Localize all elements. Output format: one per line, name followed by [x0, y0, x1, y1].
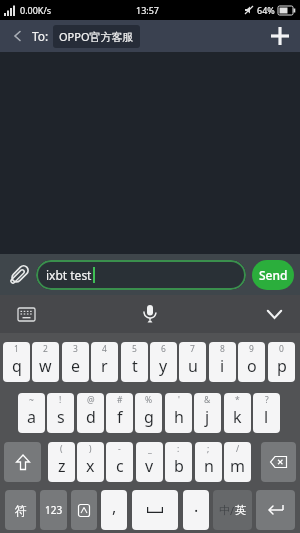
staticText: ' — [178, 394, 180, 406]
button[interactable] — [261, 442, 296, 482]
button[interactable]: @ — [77, 393, 104, 433]
staticText: p — [277, 355, 287, 377]
button[interactable]: 7 — [179, 342, 206, 382]
staticText: / — [236, 443, 240, 455]
button[interactable] — [256, 490, 295, 530]
button[interactable]: ! — [47, 393, 74, 433]
staticText: x — [86, 455, 95, 477]
button[interactable]: Send — [252, 260, 294, 290]
staticText: - — [118, 443, 121, 455]
staticText: & — [204, 394, 211, 406]
staticText: q — [12, 355, 22, 377]
staticText: @ — [87, 394, 95, 406]
button[interactable]: : — [165, 442, 192, 482]
staticText: ! — [59, 394, 62, 406]
staticText: n — [204, 455, 214, 477]
staticText: 64% — [257, 4, 275, 16]
staticText: Send — [259, 267, 288, 283]
button[interactable]: . — [183, 490, 209, 530]
staticText: 2 — [43, 343, 48, 355]
staticText: g — [144, 406, 154, 428]
staticText: : — [177, 443, 180, 455]
button[interactable]: * — [224, 393, 251, 433]
button[interactable]: ( — [48, 442, 75, 482]
staticText: , — [112, 496, 117, 518]
staticText: 4 — [102, 343, 107, 355]
button[interactable]: - — [106, 442, 133, 482]
button[interactable]: 3 — [62, 342, 89, 382]
button[interactable]: ixbt test — [36, 260, 246, 290]
staticText: * — [235, 394, 240, 406]
staticText: 英 — [235, 503, 246, 517]
staticText: 8 — [220, 343, 225, 355]
staticText: o — [247, 355, 257, 377]
button[interactable] — [132, 490, 178, 530]
button[interactable]: 4 — [91, 342, 118, 382]
button[interactable]: ; — [195, 442, 222, 482]
button[interactable] — [5, 261, 33, 289]
staticText: k — [233, 406, 242, 428]
staticText: l — [264, 406, 269, 428]
staticText: t — [132, 355, 138, 377]
staticText: m — [230, 455, 245, 477]
button[interactable] — [136, 300, 164, 328]
staticText: f — [117, 406, 123, 428]
button[interactable] — [71, 490, 97, 530]
button[interactable]: # — [106, 393, 133, 433]
staticText: ) — [89, 443, 92, 455]
button[interactable] — [260, 300, 288, 328]
button[interactable]: 1 — [3, 342, 30, 382]
button[interactable]: 5 — [121, 342, 148, 382]
staticText: / — [230, 503, 235, 518]
button[interactable] — [4, 442, 41, 482]
staticText: 6 — [161, 343, 166, 355]
button[interactable]: , — [101, 490, 127, 530]
button[interactable]: ' — [165, 393, 192, 433]
staticText: 0 — [279, 343, 284, 355]
staticText: _ — [148, 443, 152, 455]
staticText: 13:57 — [136, 4, 160, 16]
staticText: 中 — [219, 503, 230, 517]
staticText: To: — [32, 28, 49, 44]
button[interactable]: 符 — [5, 490, 36, 530]
staticText: c — [116, 455, 124, 477]
button[interactable]: 中 — [213, 490, 252, 530]
staticText: 1 — [14, 343, 19, 355]
staticText: i — [220, 355, 225, 377]
button[interactable]: % — [135, 393, 162, 433]
button[interactable]: 9 — [238, 342, 265, 382]
staticText: b — [174, 455, 184, 477]
button[interactable] — [12, 300, 40, 328]
button[interactable]: / — [224, 442, 251, 482]
staticText: h — [174, 406, 184, 428]
button[interactable] — [8, 27, 26, 45]
staticText: a — [27, 406, 36, 428]
button[interactable]: & — [194, 393, 221, 433]
staticText: y — [159, 355, 168, 377]
staticText: ? — [265, 394, 269, 406]
staticText: z — [58, 455, 66, 477]
staticText: . — [194, 495, 199, 517]
button[interactable]: 2 — [32, 342, 59, 382]
staticText: r — [101, 355, 108, 377]
button[interactable]: ~ — [18, 393, 45, 433]
button[interactable] — [268, 24, 292, 48]
button[interactable]: OPPO官方客服 — [53, 25, 140, 48]
staticText: ; — [207, 443, 210, 455]
button[interactable]: 6 — [150, 342, 177, 382]
button[interactable]: 8 — [209, 342, 236, 382]
staticText: u — [188, 355, 198, 377]
staticText: # — [117, 394, 123, 406]
button[interactable]: 0 — [268, 342, 295, 382]
button[interactable]: 123 — [40, 490, 67, 530]
staticText: 9 — [249, 343, 254, 355]
staticText: v — [145, 455, 154, 477]
button[interactable]: _ — [136, 442, 163, 482]
staticText: e — [71, 355, 81, 377]
staticText: d — [86, 406, 96, 428]
staticText: 123 — [45, 503, 63, 517]
staticText: j — [205, 406, 210, 428]
staticText: 0.00K/s — [20, 4, 52, 16]
button[interactable]: ? — [253, 393, 280, 433]
button[interactable]: ) — [77, 442, 104, 482]
